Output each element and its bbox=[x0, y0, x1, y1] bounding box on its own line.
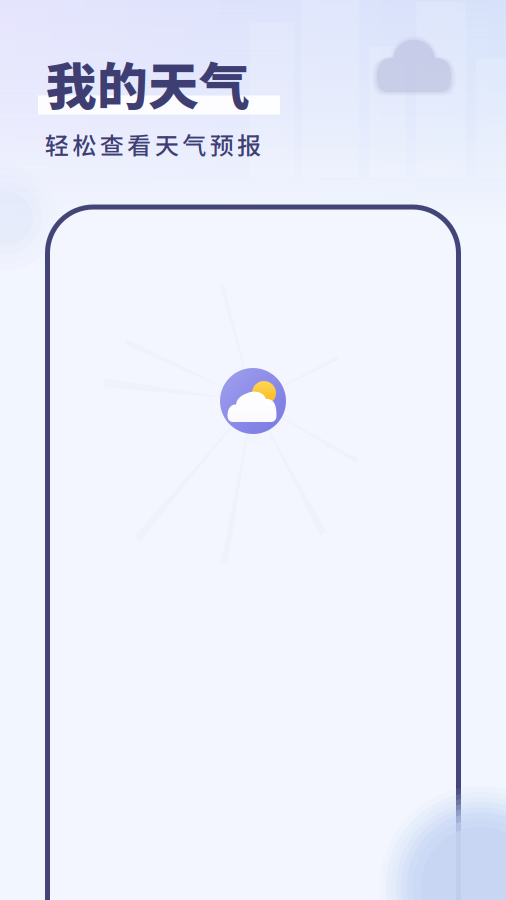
staticText: 我的天气 bbox=[46, 46, 250, 120]
staticText: 轻松查看天气预报 bbox=[45, 127, 261, 161]
button[interactable]: 我的天气 bbox=[218, 361, 288, 441]
